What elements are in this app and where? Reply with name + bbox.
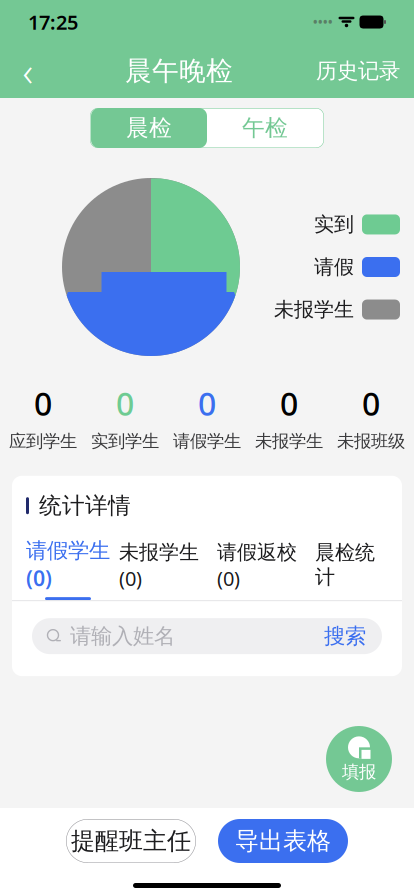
staticText: 未报班级	[337, 430, 405, 452]
button[interactable]: 导出表格	[218, 819, 348, 863]
staticText: 请输入姓名	[70, 623, 175, 649]
staticText: 提醒班主任	[71, 826, 191, 856]
button[interactable]: 请假返校 (0)	[208, 538, 306, 599]
staticText: 0	[34, 382, 52, 424]
staticText: 晨检统计	[315, 540, 375, 589]
staticText: 实到学生	[91, 430, 159, 452]
button[interactable]: 搜索	[308, 618, 382, 654]
staticText: ‹	[22, 44, 33, 97]
staticText: 未报学生	[255, 430, 323, 452]
staticText: 填报	[342, 761, 376, 783]
staticText: 请假学生	[173, 430, 241, 452]
staticText: 0	[198, 382, 216, 424]
staticText: 晨午晚检	[125, 55, 233, 87]
staticText: 未报学生	[274, 297, 354, 322]
staticText: 应到学生	[9, 430, 77, 452]
staticText: 17:25	[28, 9, 78, 35]
button[interactable]: 请假学生(0)	[26, 538, 110, 592]
button[interactable]: 未报学生 (0)	[110, 538, 208, 599]
button[interactable]: 晨检	[91, 108, 207, 148]
staticText: 午检	[242, 114, 288, 142]
button[interactable]: 午检	[207, 108, 323, 148]
staticText: 请假	[314, 255, 354, 279]
button[interactable]: 历史记录	[302, 45, 414, 97]
staticText: 历史记录	[316, 58, 400, 84]
staticText: 请假学生(0)	[26, 538, 110, 592]
button[interactable]: 晨检统计	[306, 540, 384, 597]
button[interactable]: 返回	[0, 45, 56, 97]
staticText: 统计详情	[39, 492, 131, 520]
staticText: 0	[362, 382, 380, 424]
staticText: 导出表格	[235, 826, 331, 856]
staticText: 0	[116, 382, 134, 424]
staticText: 晨检	[126, 114, 172, 142]
staticText: 搜索	[324, 623, 366, 649]
staticText: 0	[280, 382, 298, 424]
staticText: 请假返校 (0)	[217, 538, 297, 591]
staticText: ••••	[313, 14, 333, 30]
staticText: 未报学生 (0)	[119, 538, 199, 591]
button[interactable]: 填报	[326, 726, 392, 792]
button[interactable]: 提醒班主任	[66, 819, 196, 863]
staticText: 实到	[314, 212, 354, 237]
